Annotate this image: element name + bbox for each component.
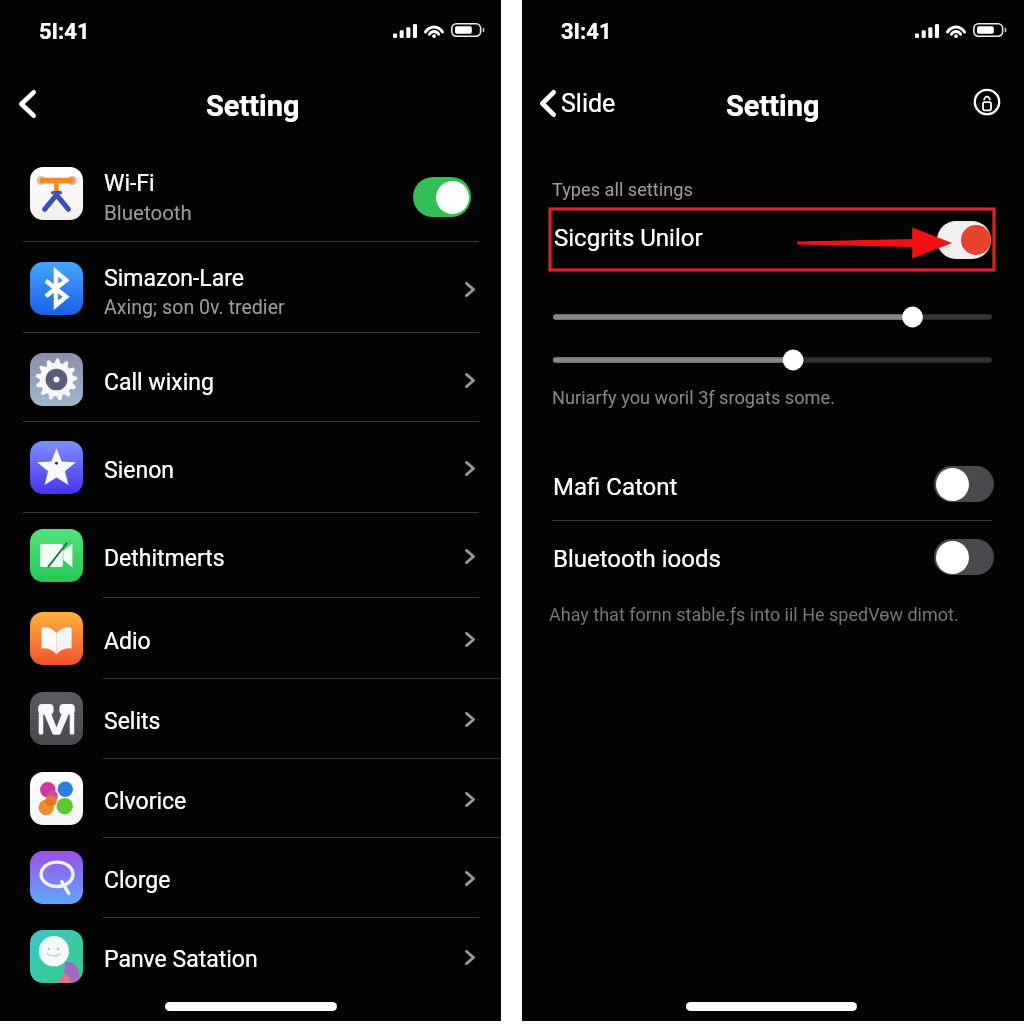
button[interactable] (0, 755, 501, 843)
staticText: Adio (104, 628, 151, 655)
staticText: Types all settings (552, 179, 693, 200)
button[interactable] (0, 336, 501, 424)
staticText: Dethitmerts (104, 545, 225, 572)
button[interactable] (0, 834, 501, 922)
staticText: Setting (206, 89, 300, 123)
button[interactable]: Bluetooth toggle (934, 539, 994, 575)
button[interactable] (0, 512, 501, 600)
staticText: Setting (726, 89, 820, 123)
button[interactable] (550, 526, 998, 588)
button[interactable]: Back (4, 83, 48, 127)
staticText: Bluetooth (104, 201, 192, 225)
staticText: Panve Satation (104, 946, 258, 973)
button[interactable] (553, 347, 992, 373)
button[interactable] (0, 245, 501, 333)
button[interactable] (0, 913, 501, 1001)
staticText: 3I:41 (561, 19, 612, 45)
button[interactable] (0, 595, 501, 683)
button[interactable]: Mafi Catont toggle (934, 466, 994, 502)
staticText: 5I:41 (39, 19, 90, 45)
staticText: Nuriarfy you woril 3ƒ srogats some. (552, 387, 835, 408)
button[interactable]: Slide (530, 80, 626, 128)
button[interactable] (550, 455, 998, 517)
staticText: Ahay that fornn stable.ƒs into iil He sp… (549, 604, 959, 625)
button[interactable]: Wi-Fi toggle (413, 177, 471, 217)
staticText: Mafi Catont (553, 473, 678, 501)
staticText: Bluetooth ioods (553, 545, 721, 573)
button[interactable]: Privacy lock (968, 83, 1006, 121)
staticText: Sienon (104, 457, 174, 484)
staticText: Selits (104, 708, 161, 735)
staticText: Clorge (104, 867, 171, 894)
staticText: Call wixing (104, 369, 214, 396)
staticText: Simazon-Lare (104, 265, 245, 292)
button[interactable] (0, 424, 501, 512)
staticText: Slide (561, 89, 616, 118)
staticText: Wi-Fi (104, 170, 155, 197)
button[interactable] (0, 675, 501, 763)
staticText: Clvorice (104, 788, 187, 815)
staticText: Axing; son 0v. tredier (104, 296, 285, 319)
button[interactable]: Sicgrits Unilor (550, 209, 994, 270)
button[interactable] (0, 150, 501, 238)
button[interactable] (553, 304, 992, 330)
staticText: Sicgrits Unilor (554, 224, 703, 252)
